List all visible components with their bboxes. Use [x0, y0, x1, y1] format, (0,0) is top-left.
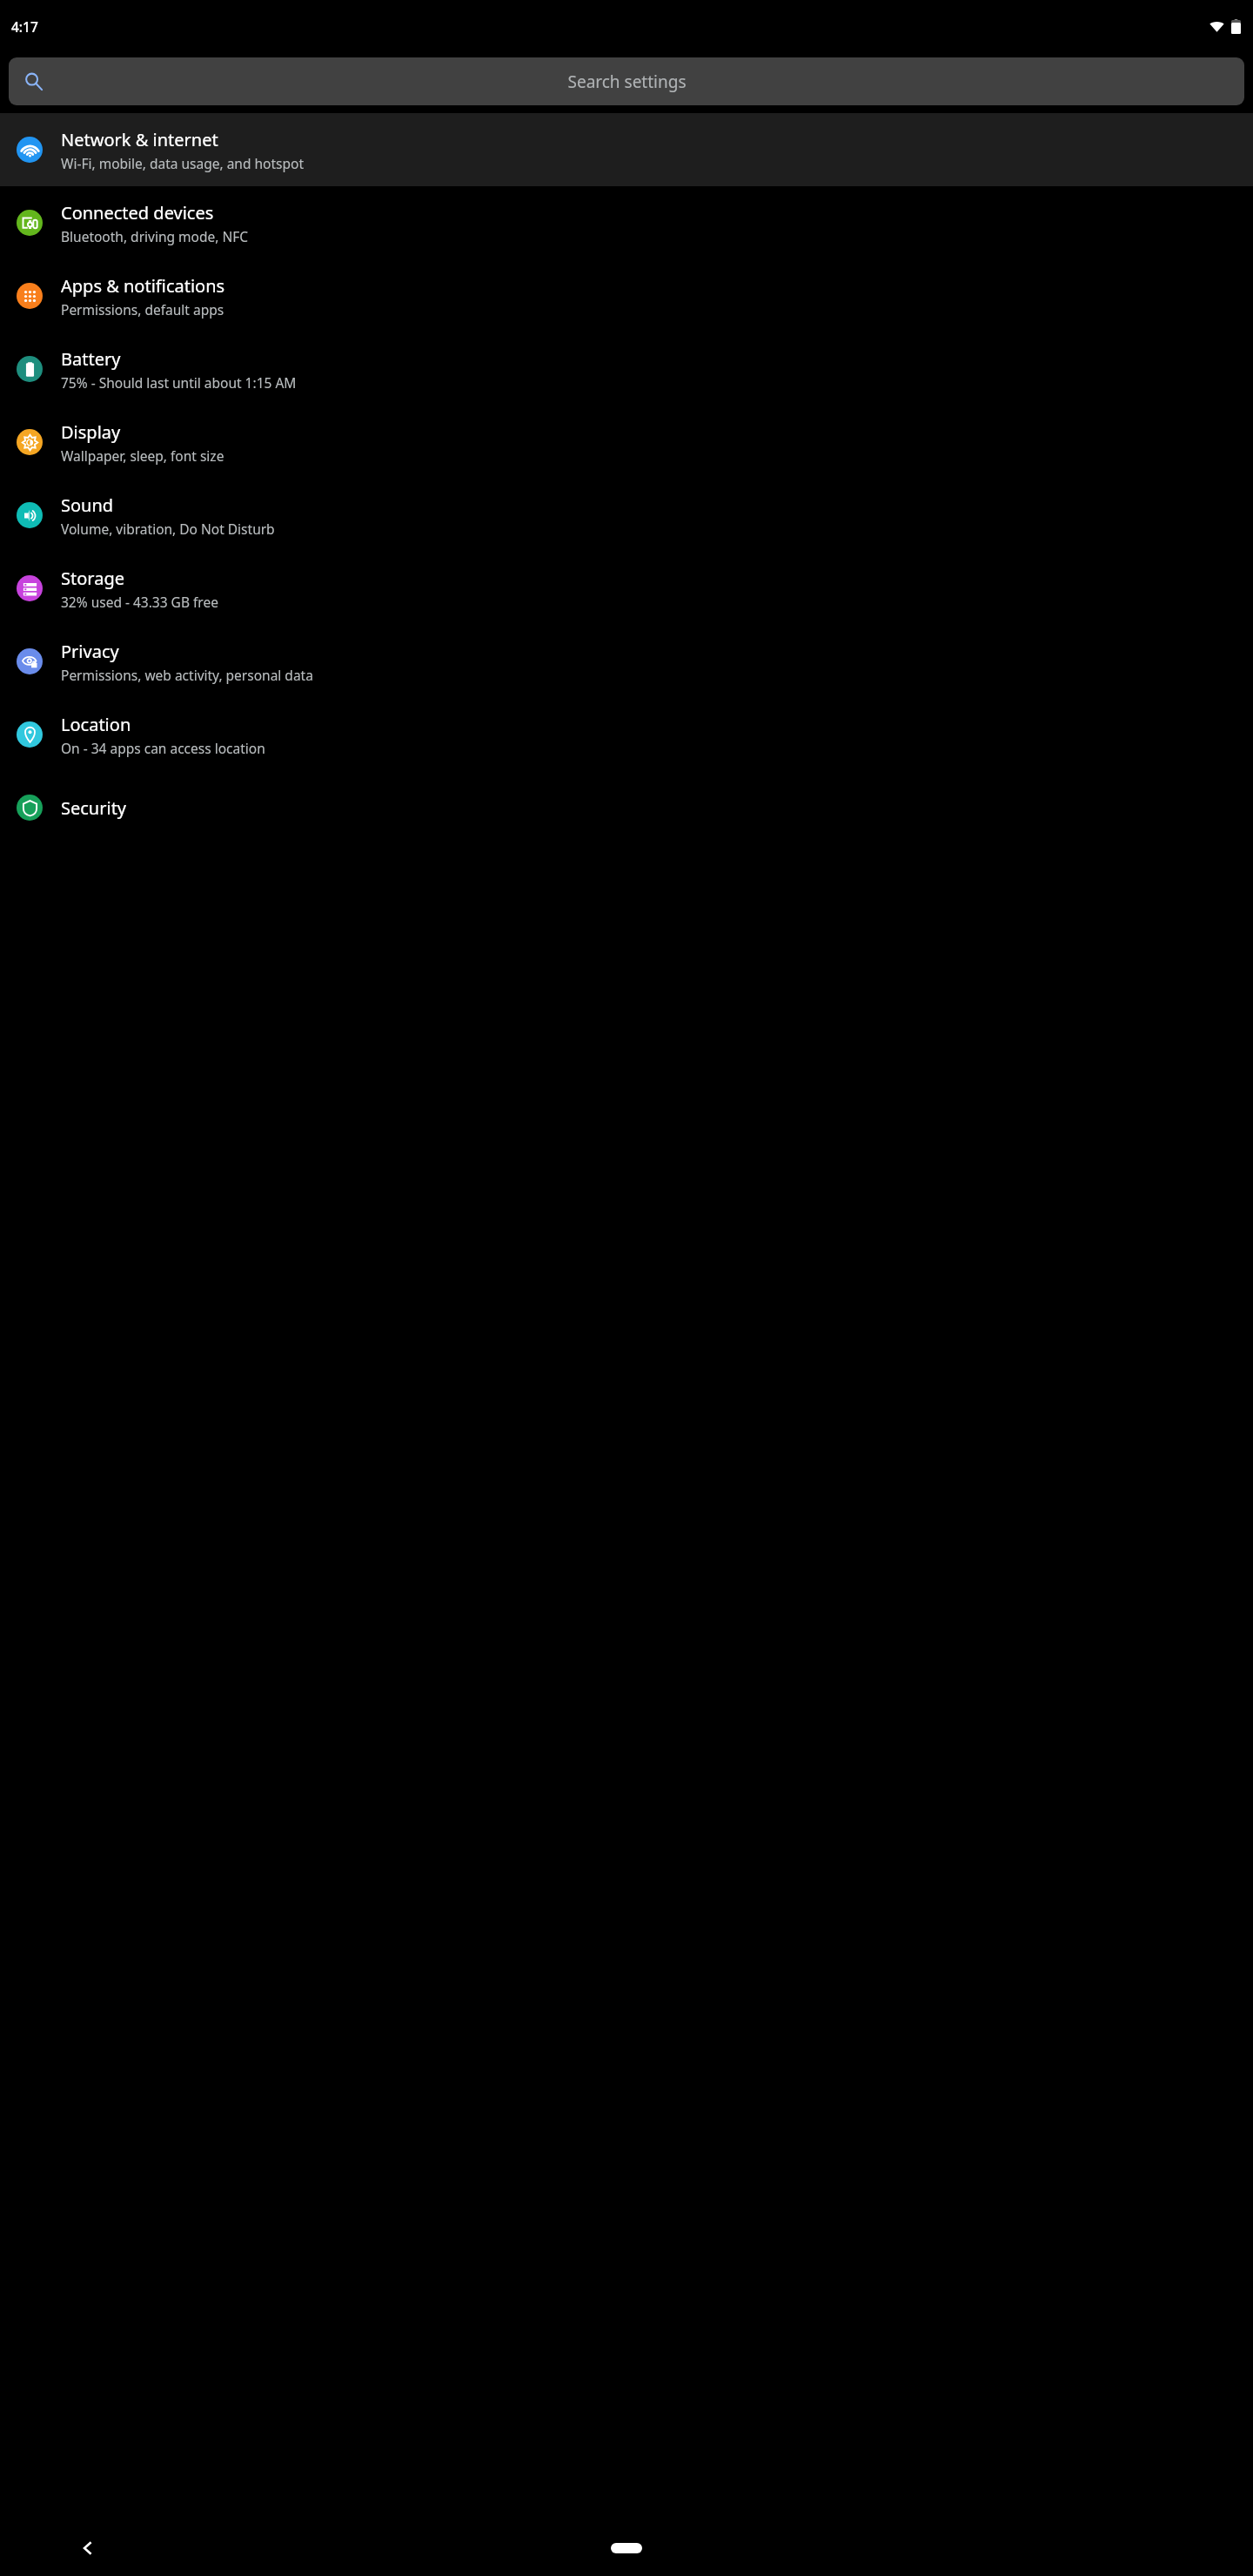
staticText: Wallpaper, sleep, font size — [61, 446, 224, 465]
button[interactable]: Location — [0, 698, 1253, 771]
button[interactable]: Apps & notifications — [0, 259, 1253, 332]
button[interactable]: Back — [68, 2528, 108, 2568]
button[interactable]: Sound — [0, 479, 1253, 552]
button[interactable]: Battery — [0, 332, 1253, 406]
button[interactable]: Network & internet — [0, 113, 1253, 186]
button[interactable]: Home — [600, 2537, 653, 2559]
button[interactable]: Storage — [0, 552, 1253, 625]
staticText: Apps & notifications — [61, 274, 225, 298]
staticText: Battery — [61, 347, 121, 371]
staticText: 75% - Should last until about 1:15 AM — [61, 373, 297, 392]
staticText: Search settings — [567, 70, 687, 93]
staticText: On - 34 apps can access location — [61, 739, 265, 757]
button[interactable]: Security — [0, 771, 1253, 844]
staticText: Security — [61, 796, 127, 820]
staticText: Display — [61, 420, 121, 444]
staticText: Location — [61, 713, 131, 736]
staticText: Sound — [61, 493, 114, 517]
staticText: Storage — [61, 567, 124, 590]
staticText: Wi-Fi, mobile, data usage, and hotspot — [61, 154, 304, 172]
staticText: Connected devices — [61, 201, 214, 225]
button[interactable]: Display — [0, 406, 1253, 479]
button[interactable]: Privacy — [0, 625, 1253, 698]
staticText: Permissions, default apps — [61, 300, 224, 319]
staticText: Volume, vibration, Do Not Disturb — [61, 520, 275, 538]
button[interactable]: Connected devices — [0, 186, 1253, 259]
staticText: Privacy — [61, 640, 119, 663]
staticText: Bluetooth, driving mode, NFC — [61, 227, 249, 245]
staticText: Permissions, web activity, personal data — [61, 666, 313, 684]
staticText: 4:17 — [11, 17, 38, 36]
staticText: 32% used - 43.33 GB free — [61, 593, 218, 611]
staticText: Network & internet — [61, 128, 218, 151]
button[interactable]: Search settings — [9, 57, 1244, 105]
